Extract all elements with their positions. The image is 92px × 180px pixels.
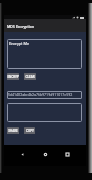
staticText: MD5 Encryption [7, 24, 35, 28]
staticText: COPY [26, 129, 34, 133]
button[interactable]: SHARE [7, 127, 19, 134]
button[interactable]: Back [18, 150, 27, 159]
staticText: Encrypt Me [9, 41, 30, 46]
staticText: ENCRYPT [7, 75, 19, 79]
button[interactable]: Home [41, 150, 50, 159]
staticText: SHARE [8, 129, 18, 133]
button[interactable]: ENCRYPT [7, 73, 19, 80]
button[interactable]: Recents [63, 150, 72, 159]
button[interactable]: CLEAR [24, 73, 36, 80]
button[interactable]: COPY [24, 127, 35, 134]
staticText: 5d41402abc4b2a76b9719d911017c592 [8, 93, 73, 97]
staticText: CLEAR [25, 75, 35, 79]
